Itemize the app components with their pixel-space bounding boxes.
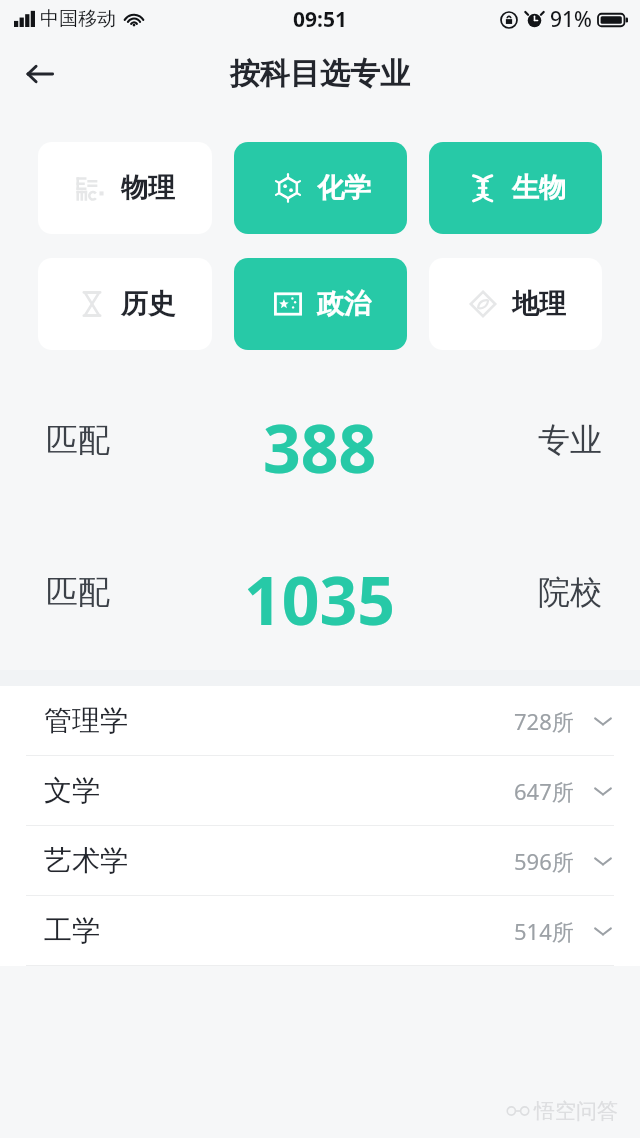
staticText: 生物 — [512, 171, 566, 205]
staticText: 728所 — [514, 706, 574, 736]
staticText: 悟空问答 — [534, 1098, 618, 1124]
staticText: 地理 — [512, 287, 566, 321]
staticText: 匹配 — [46, 572, 110, 612]
staticText: 工学 — [44, 913, 100, 948]
staticText: 514所 — [514, 916, 574, 946]
staticText: 化学 — [317, 171, 371, 205]
button[interactable]: 地理 — [429, 258, 602, 350]
staticText: 匹配 — [46, 420, 110, 460]
staticText: 596所 — [514, 846, 574, 876]
button[interactable]: 文学 — [0, 756, 640, 826]
staticText: 09:51 — [293, 5, 347, 34]
button[interactable]: 化学 — [234, 142, 407, 234]
button[interactable]: 历史 — [38, 258, 212, 350]
staticText: 中国移动 — [40, 7, 116, 31]
staticText: 按科目选专业 — [230, 55, 410, 93]
staticText: 历史 — [121, 287, 175, 321]
staticText: 1035 — [244, 554, 396, 630]
staticText: 91% — [550, 5, 592, 34]
staticText: 院校 — [538, 572, 602, 612]
staticText: 文学 — [44, 773, 100, 808]
staticText: 物理 — [121, 171, 175, 205]
button[interactable]: 工学 — [0, 896, 640, 966]
button[interactable]: 物理 — [38, 142, 212, 234]
staticText: 政治 — [317, 287, 371, 321]
button[interactable]: 生物 — [429, 142, 602, 234]
button[interactable]: 政治 — [234, 258, 407, 350]
staticText: 专业 — [538, 420, 602, 460]
button[interactable]: 管理学 — [0, 686, 640, 756]
staticText: 艺术学 — [44, 843, 128, 878]
staticText: 388 — [263, 402, 377, 478]
button[interactable]: Back — [12, 46, 68, 102]
staticText: 647所 — [514, 776, 574, 806]
button[interactable]: 艺术学 — [0, 826, 640, 896]
staticText: 管理学 — [44, 703, 128, 738]
